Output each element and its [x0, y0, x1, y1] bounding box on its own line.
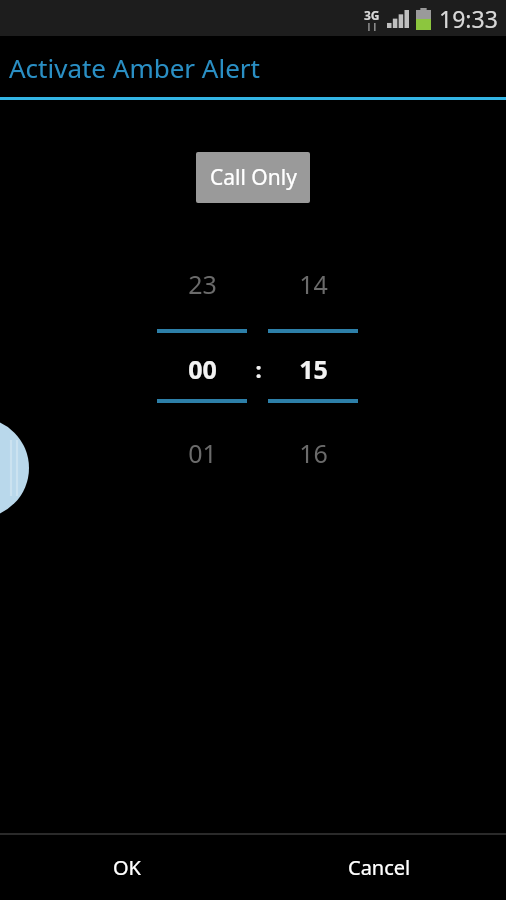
- button[interactable]: 00: [156, 350, 248, 388]
- button[interactable]: OK: [0, 835, 253, 900]
- staticText: 23: [188, 267, 217, 301]
- staticText: 01: [188, 436, 217, 470]
- staticText: 15: [299, 352, 328, 386]
- staticText: Activate Amber Alert: [9, 50, 260, 85]
- staticText: Call Only: [210, 163, 297, 192]
- button[interactable]: 23: [156, 266, 248, 302]
- staticText: Cancel: [348, 854, 411, 881]
- staticText: 3G: [364, 7, 380, 23]
- staticText: 16: [299, 436, 328, 470]
- button[interactable]: 16: [267, 435, 359, 471]
- button[interactable]: Drag handle: [0, 418, 29, 518]
- staticText: 14: [299, 267, 328, 301]
- button[interactable]: 14: [267, 266, 359, 302]
- staticText: 19:33: [439, 3, 498, 34]
- staticText: 00: [188, 352, 217, 386]
- button[interactable]: Cancel: [253, 835, 506, 900]
- staticText: OK: [113, 854, 141, 881]
- button[interactable]: Call Only: [196, 152, 310, 203]
- button[interactable]: 01: [156, 435, 248, 471]
- staticText: :: [255, 354, 262, 384]
- button[interactable]: 15: [267, 350, 359, 388]
